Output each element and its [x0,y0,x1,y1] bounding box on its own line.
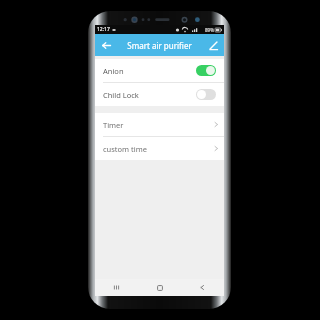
staticText: 89% [205,27,214,33]
button[interactable]: Home [138,279,181,296]
button[interactable]: Child Lock [95,83,224,106]
staticText: 12:17 [97,26,110,33]
button[interactable] [196,65,216,76]
staticText: custom time [103,144,147,154]
button[interactable]: Back [181,279,224,296]
button[interactable]: custom time [95,137,224,160]
staticText: Anion [103,66,124,76]
button[interactable]: Back [98,37,114,53]
button[interactable]: Recents [95,279,138,296]
button[interactable]: Anion [95,59,224,82]
staticText: Child Lock [103,90,139,100]
button[interactable] [196,89,216,100]
staticText: Timer [103,120,124,130]
button[interactable]: Edit [205,37,221,53]
button[interactable]: Timer [95,113,224,136]
staticText: Smart air purifier [127,40,192,51]
